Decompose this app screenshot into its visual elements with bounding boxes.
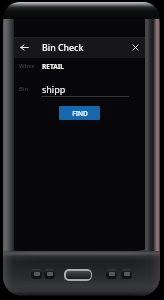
button[interactable]: Scan [64,269,92,281]
button[interactable]: Key [106,269,117,279]
staticText: Bin [19,85,42,93]
staticText: shipp [42,83,66,95]
button[interactable]: Key [31,269,42,279]
staticText: Bin Check [42,42,84,54]
button[interactable]: Key [44,269,55,279]
staticText: Whse [19,62,42,70]
staticText: RETAIL [42,62,64,71]
button[interactable]: Key [121,269,132,279]
staticText: FIND [72,109,88,118]
button[interactable]: Close [125,37,145,58]
button[interactable]: Back [14,37,34,58]
button[interactable]: FIND [59,106,100,120]
